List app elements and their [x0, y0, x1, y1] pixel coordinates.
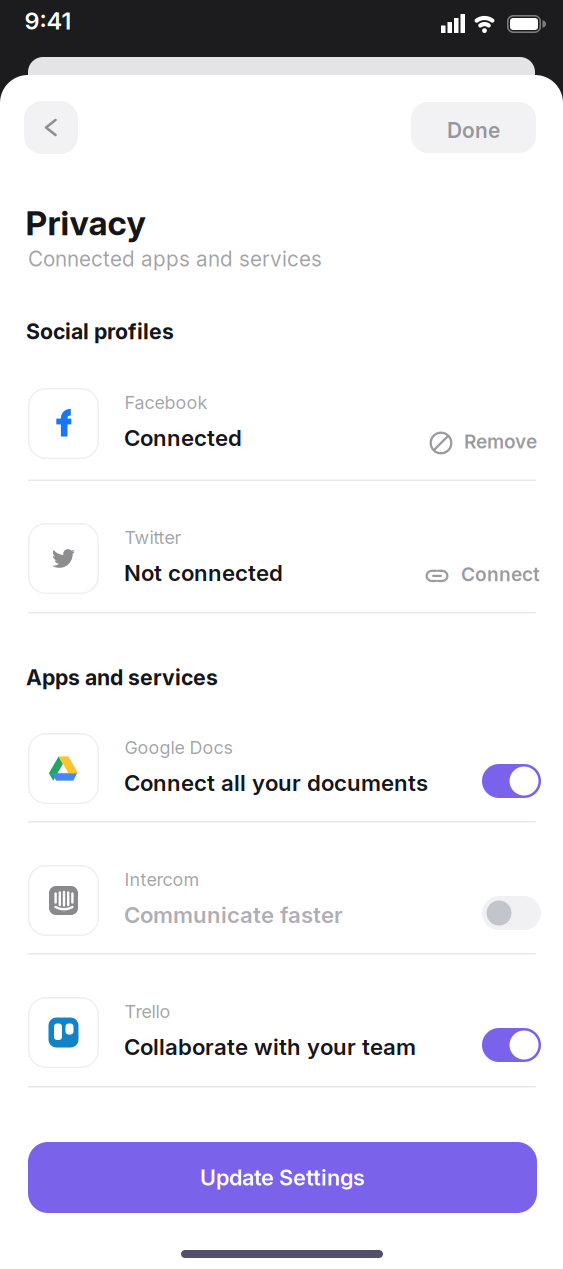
button[interactable]: Update Settings [28, 1142, 537, 1213]
staticText: Privacy [25, 202, 145, 243]
staticText: Update Settings [200, 1164, 365, 1191]
button[interactable]: Connect [425, 564, 536, 589]
staticText: Apps and services [26, 664, 218, 690]
staticText: Trello [124, 1001, 170, 1022]
staticText: Remove [464, 430, 537, 453]
button[interactable]: Done [411, 102, 536, 153]
staticText: Collaborate with your team [124, 1033, 416, 1060]
staticText: Connect all your documents [124, 769, 428, 796]
staticText: Connected [124, 424, 242, 451]
staticText: Communicate faster [124, 901, 343, 928]
staticText: Twitter [124, 527, 181, 548]
staticText: Facebook [124, 392, 207, 413]
button[interactable]: Remove [429, 431, 536, 456]
button[interactable]: Back [24, 101, 78, 154]
staticText: Intercom [124, 869, 199, 890]
button[interactable]: Intercom [482, 896, 541, 930]
staticText: Social profiles [26, 319, 174, 344]
button[interactable]: Trello [482, 1028, 541, 1062]
staticText: 9:41 [24, 6, 71, 35]
button[interactable]: Google Docs [482, 764, 541, 798]
staticText: Done [447, 118, 500, 143]
staticText: Not connected [124, 559, 283, 586]
staticText: Connect [461, 563, 540, 586]
staticText: Google Docs [124, 737, 232, 758]
staticText: Connected apps and services [28, 246, 322, 271]
